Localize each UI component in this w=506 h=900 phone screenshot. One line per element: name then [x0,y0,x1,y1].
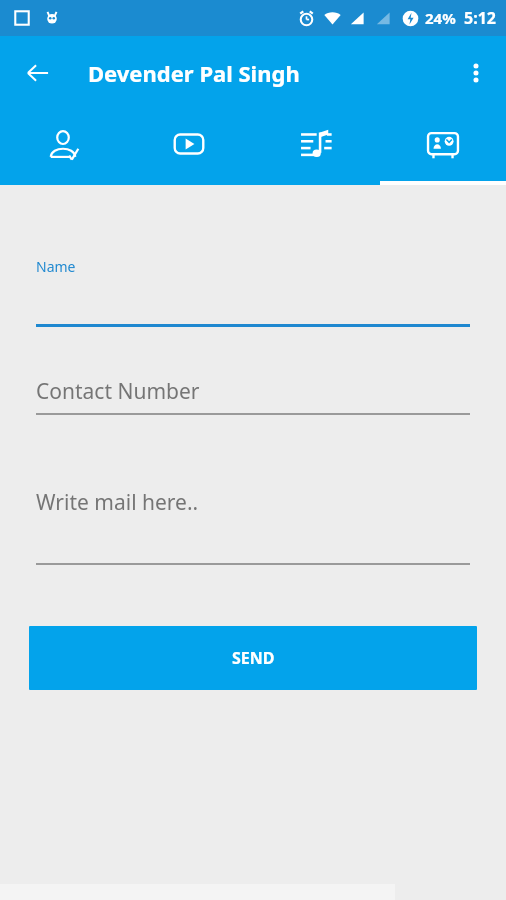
button[interactable]: Write mail here.. [36,488,470,565]
staticText: Contact Number [36,377,200,406]
staticText: Write mail here.. [36,488,199,517]
staticText: Name [36,257,76,276]
staticText: 5:12 [464,7,496,29]
button[interactable]: Name [36,257,470,327]
staticText: Devender Pal Singh [88,58,300,88]
button[interactable]: Videos [126,110,252,185]
button[interactable]: Back [14,49,62,97]
button[interactable]: Contacts [0,110,126,185]
button[interactable]: Playlist [252,110,379,185]
staticText: 24% [425,8,456,28]
staticText: SEND [232,647,275,669]
button[interactable]: Card [379,110,506,185]
button[interactable]: Contact Number [36,377,470,415]
button[interactable]: More options [452,49,500,97]
button[interactable]: SEND [29,626,477,690]
